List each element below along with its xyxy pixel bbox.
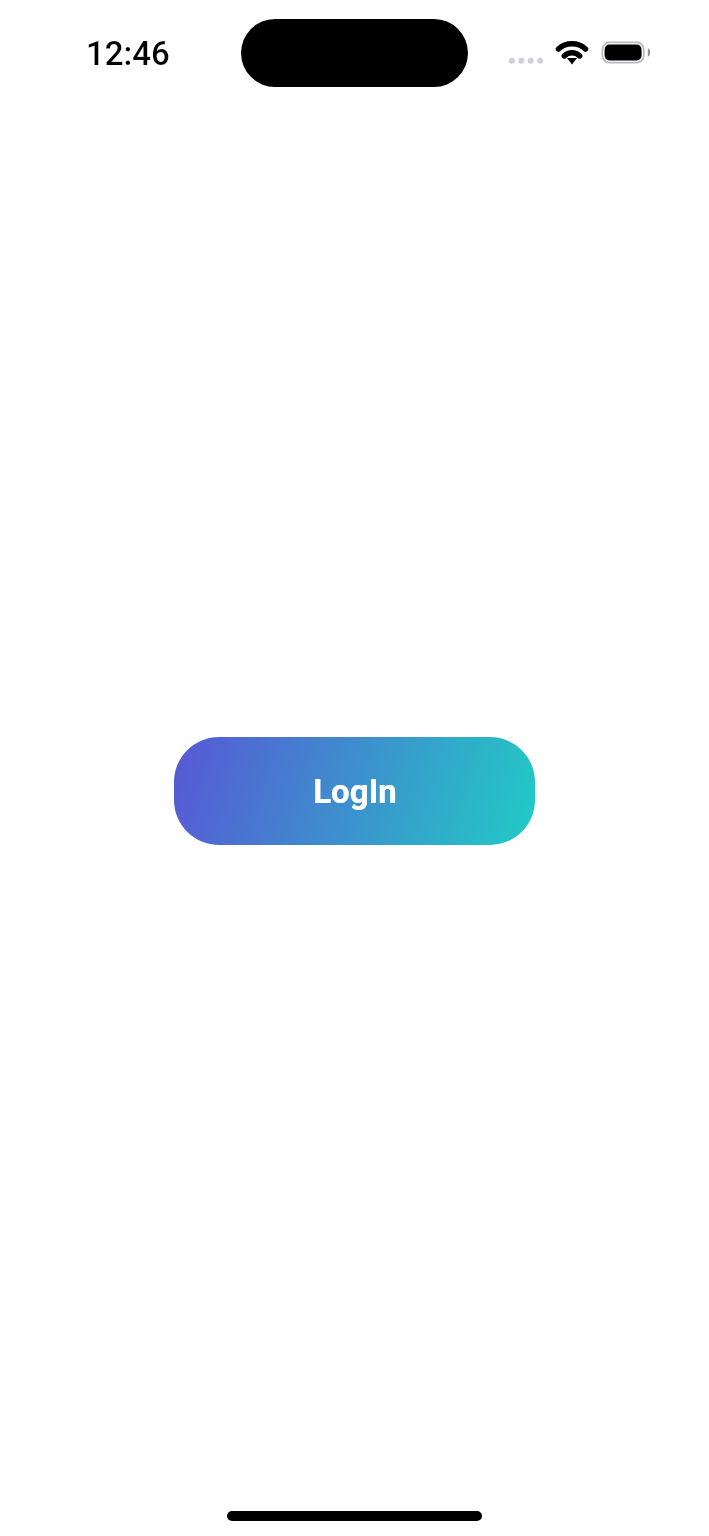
other: Wi-Fi [552,36,592,68]
other: Cellular signal [505,50,555,72]
button[interactable]: LogIn [174,737,535,845]
other: Battery [600,40,654,66]
staticText: LogIn [313,772,397,811]
staticText: 12:46 [86,34,170,73]
